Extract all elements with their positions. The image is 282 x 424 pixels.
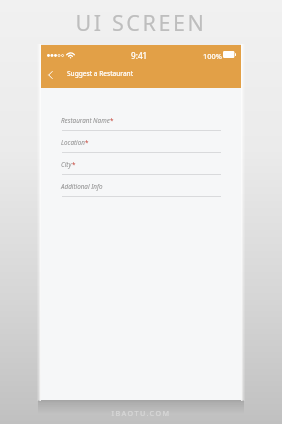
- staticText: Additional Info: [61, 182, 103, 191]
- staticText: UI SCREEN: [0, 8, 282, 37]
- button[interactable]: City: [61, 160, 221, 175]
- staticText: *: [72, 160, 76, 169]
- staticText: Suggest a Restaurant: [67, 69, 134, 78]
- staticText: Location: [61, 138, 85, 147]
- staticText: 9:41: [131, 50, 148, 61]
- staticText: 100%: [203, 51, 222, 61]
- button[interactable]: Restaurant Name: [61, 116, 221, 131]
- staticText: *: [110, 116, 114, 125]
- button[interactable]: Back: [41, 62, 60, 87]
- button[interactable]: Additional Info: [61, 182, 221, 197]
- staticText: Restaurant Name: [61, 116, 110, 125]
- staticText: City: [61, 160, 72, 169]
- staticText: IBAOTU.COM: [0, 408, 282, 418]
- button[interactable]: Location: [61, 138, 221, 153]
- staticText: *: [85, 138, 89, 147]
